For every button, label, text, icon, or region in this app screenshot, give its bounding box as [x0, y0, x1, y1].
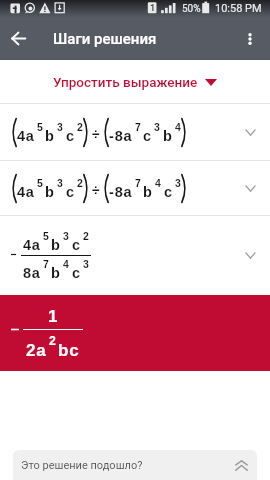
staticText: c [66, 184, 75, 200]
staticText: b [51, 265, 61, 281]
staticText: 3 [154, 122, 160, 134]
staticText: 50% [182, 3, 201, 15]
staticText: 2 [49, 334, 56, 348]
staticText: 7 [135, 178, 141, 190]
staticText: b [45, 128, 55, 144]
staticText: 4 [175, 122, 181, 134]
staticText: 7 [135, 122, 141, 134]
staticText: 2 [77, 178, 83, 190]
staticText: Упростить выражение [53, 74, 198, 90]
staticText: c [143, 128, 152, 144]
button[interactable]: 1 [0, 295, 270, 371]
staticText: 4 [155, 178, 161, 190]
staticText: c [72, 237, 81, 253]
staticText: 4 [63, 259, 69, 271]
staticText: 3 [57, 178, 63, 190]
staticText: 4a [17, 184, 35, 200]
button[interactable]: 4a [0, 216, 270, 295]
button[interactable]: Упростить выражение [0, 60, 270, 103]
staticText: 2a [26, 341, 47, 360]
staticText: 10:58 PM [215, 2, 262, 15]
button[interactable]: 4a [0, 104, 270, 160]
staticText: 3 [57, 122, 63, 134]
staticText: Шаги решения [53, 30, 157, 48]
staticText: 5 [37, 178, 43, 190]
staticText: 1 [48, 307, 58, 326]
button[interactable]: 4a [0, 161, 270, 215]
staticText: b [163, 128, 173, 144]
staticText: b [51, 237, 61, 253]
staticText: b [143, 184, 153, 200]
staticText: 4a [23, 237, 41, 253]
staticText: 3 [63, 231, 69, 243]
staticText: 1 [150, 3, 156, 14]
staticText: 4a [17, 128, 35, 144]
staticText: c [164, 184, 173, 200]
staticText: ÷ [92, 127, 100, 142]
staticText: 3 [83, 259, 89, 271]
staticText: Это решение подошло? [21, 459, 143, 472]
staticText: 2 [83, 231, 89, 243]
staticText: 3 [175, 178, 181, 190]
button[interactable]: Back [0, 17, 36, 60]
staticText: -8a [109, 128, 133, 144]
staticText: b [45, 184, 55, 200]
staticText: 7 [43, 259, 49, 271]
staticText: 8a [23, 265, 41, 281]
button[interactable]: Это решение подошло? [13, 450, 257, 480]
staticText: c [66, 128, 75, 144]
staticText: 5 [37, 122, 43, 134]
staticText: 5 [43, 231, 49, 243]
staticText: c [72, 265, 81, 281]
button[interactable]: More options [233, 17, 267, 60]
staticText: bc [58, 341, 80, 360]
staticText: 2 [77, 122, 83, 134]
staticText: ÷ [92, 183, 100, 198]
staticText: -8a [109, 184, 133, 200]
